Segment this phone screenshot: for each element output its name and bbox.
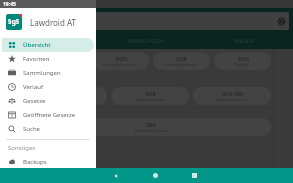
- staticText: Backups: [23, 158, 47, 166]
- staticText: §g§: [8, 17, 20, 27]
- staticText: StVO: [238, 56, 249, 62]
- staticText: …ordg…: [5, 61, 21, 66]
- staticText: Suche: [23, 125, 40, 133]
- staticText: Straßenverkehrs…: [215, 97, 250, 102]
- button[interactable]: Einstellungen: [4, 12, 289, 30]
- button[interactable]: Zurück: [96, 168, 136, 183]
- staticText: Gesetze: [23, 97, 46, 105]
- staticText: EKHG: [8, 122, 19, 127]
- staticText: Strafgesetzbuch: [135, 97, 166, 102]
- button[interactable]: EKHG: [2, 118, 24, 136]
- button[interactable]: SMG: [30, 118, 271, 136]
- staticText: FAVORITEN: [35, 38, 62, 45]
- staticText: EKHG: [115, 56, 128, 62]
- staticText: VERLAUF: [233, 38, 255, 45]
- button[interactable]: FAVORITEN: [0, 34, 97, 49]
- button[interactable]: StVO 1960: [193, 87, 271, 105]
- staticText: …über die E…: [2, 127, 24, 132]
- button[interactable]: Übersicht: [175, 168, 214, 183]
- staticText: Verlauf: [23, 83, 44, 91]
- button[interactable]: 1945: [2, 52, 24, 70]
- button[interactable]: StGB: [153, 52, 210, 70]
- staticText: SAMMLUNGEN: [128, 38, 164, 45]
- button[interactable]: Einstellungen: [273, 13, 289, 29]
- button[interactable]: Startseite: [136, 168, 175, 183]
- staticText: Favoriten: [23, 55, 50, 63]
- staticText: Strafgesetzbuch: [166, 62, 197, 67]
- button[interactable]: Backups: [2, 155, 94, 169]
- staticText: StGB: [145, 91, 156, 97]
- staticText: Sammlungen: [23, 69, 61, 77]
- staticText: …fahren: [5, 96, 21, 101]
- staticText: Lawdroid AT: [30, 17, 76, 28]
- staticText: StGB: [176, 56, 187, 62]
- button[interactable]: EKHG: [92, 52, 149, 70]
- staticText: Sonstiges: [8, 144, 36, 152]
- button[interactable]: VG 1940: [2, 87, 24, 105]
- staticText: Straßen…: [234, 62, 252, 67]
- button[interactable]: ABGB: [30, 52, 88, 70]
- staticText: Suchtmittelgesetz: [134, 128, 168, 133]
- button[interactable]: Suche: [2, 122, 94, 136]
- button[interactable]: Gesetze: [2, 94, 94, 108]
- button[interactable]: Geöffnete Gesetze: [2, 108, 94, 122]
- button[interactable]: Favoriten: [2, 52, 94, 66]
- button[interactable]: Sammlungen: [2, 66, 94, 80]
- staticText: 19:45: [3, 1, 16, 8]
- staticText: SMG: [146, 122, 156, 128]
- staticText: 1945: [8, 56, 18, 61]
- button[interactable]: ABGB: [30, 87, 107, 105]
- staticText: StVO 1960: [221, 91, 244, 97]
- button[interactable]: StGB: [111, 87, 189, 105]
- button[interactable]: StVO: [214, 52, 271, 70]
- button[interactable]: Verlauf: [2, 80, 94, 94]
- button[interactable]: Übersicht: [2, 38, 94, 52]
- staticText: Übersicht: [23, 41, 51, 49]
- staticText: Geöffnete Gesetze: [23, 111, 76, 119]
- button[interactable]: SAMMLUNGEN: [97, 34, 195, 49]
- staticText: Vertrag über die E…: [102, 62, 140, 67]
